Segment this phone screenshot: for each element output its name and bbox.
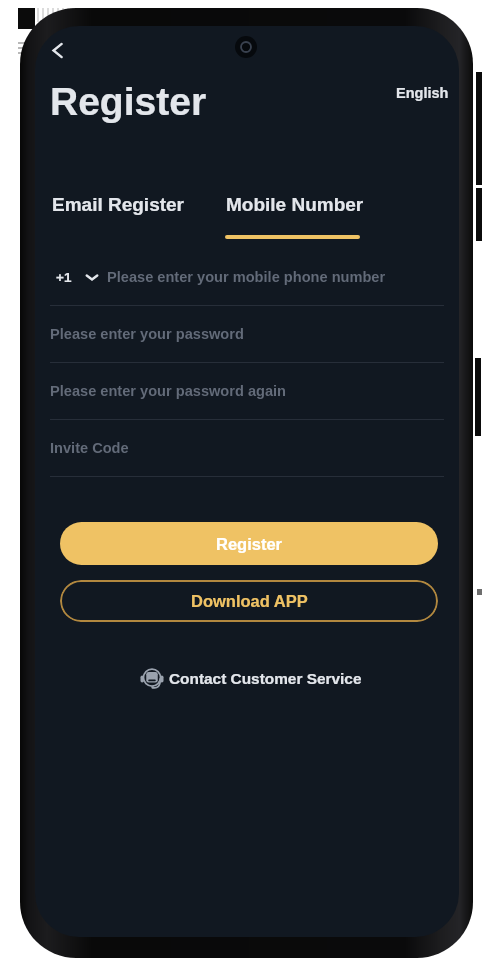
staticText: +1 (56, 270, 72, 285)
staticText: Invite Code (50, 440, 129, 456)
staticText: Please enter your password (50, 326, 244, 342)
button[interactable]: Back (37, 30, 77, 70)
staticText: Register (50, 80, 207, 124)
staticText: Contact Customer Service (169, 670, 362, 687)
staticText: Please enter your mobile phone number (107, 269, 386, 285)
staticText: Download APP (191, 592, 308, 610)
staticText: Email Register (52, 194, 184, 215)
button[interactable]: English (388, 77, 457, 109)
staticText: Register (216, 535, 283, 553)
button[interactable]: Mobile Number (220, 188, 368, 244)
staticText: Please enter your password again (50, 383, 287, 399)
staticText: Mobile Number (226, 194, 364, 215)
button[interactable]: Contact Customer Service (136, 663, 366, 694)
button[interactable]: Register (60, 522, 438, 565)
staticText: English (396, 85, 449, 101)
button[interactable]: Email Register (49, 191, 187, 218)
button[interactable]: Download APP (60, 580, 438, 622)
